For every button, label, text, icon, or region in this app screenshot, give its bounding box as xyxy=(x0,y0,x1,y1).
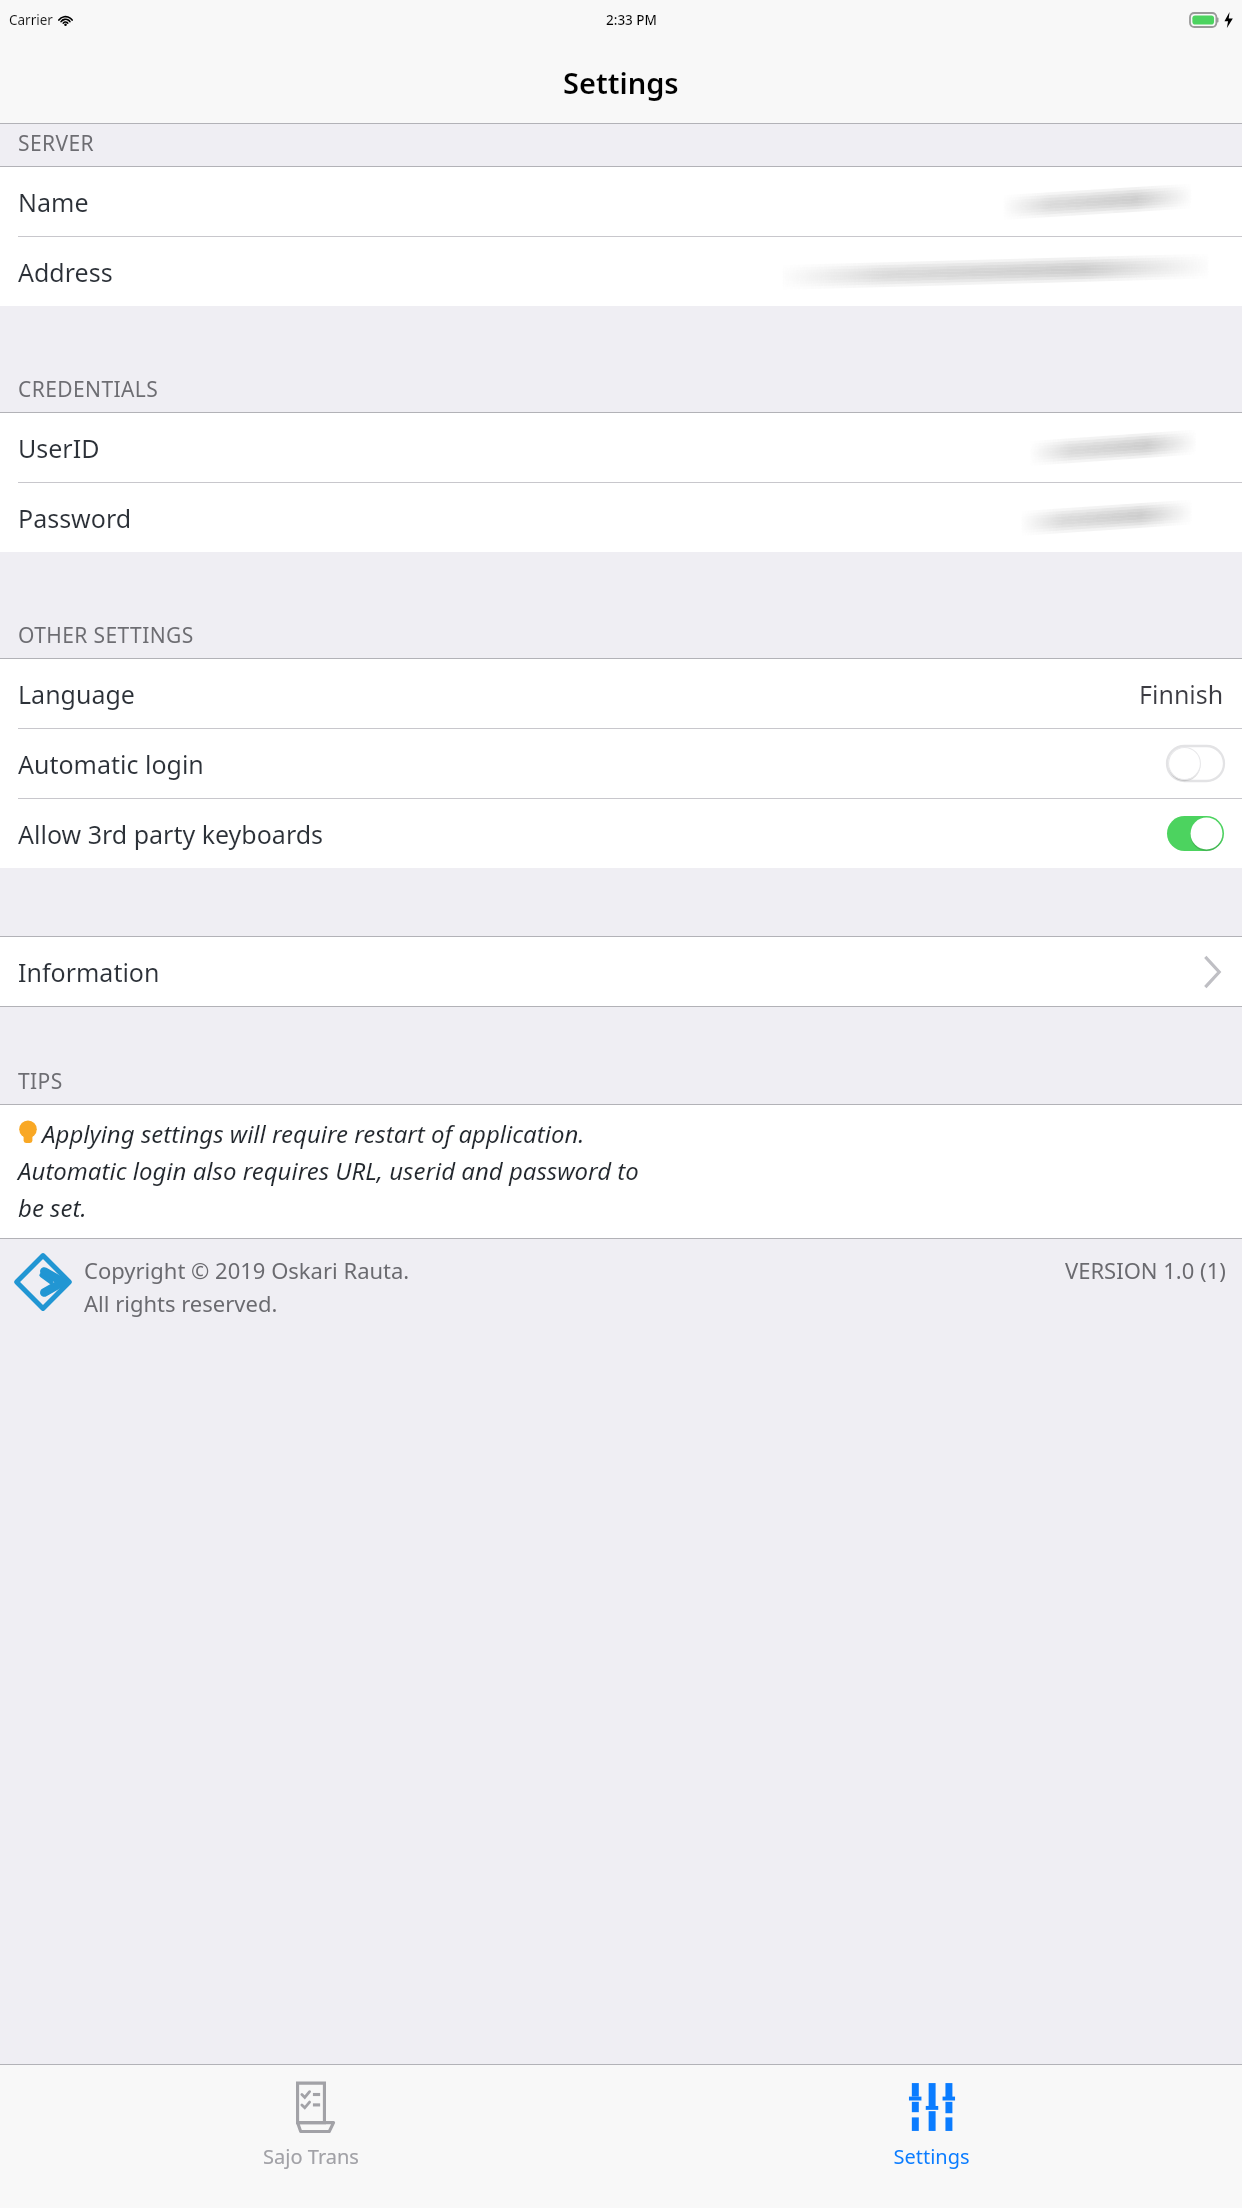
button[interactable]: Password xyxy=(0,483,1242,552)
staticText: Automatic login also requires URL, useri… xyxy=(18,1154,639,1187)
staticText: Automatic login xyxy=(18,747,204,781)
button[interactable]: Language xyxy=(0,659,1242,728)
other: Toggle off xyxy=(1167,746,1224,781)
button[interactable]: Information xyxy=(0,937,1242,1006)
button[interactable]: Allow 3rd party keyboards xyxy=(0,799,1242,868)
staticText: 2:33 PM xyxy=(606,11,657,29)
staticText: All rights reserved. xyxy=(84,1288,278,1318)
button[interactable]: Settings xyxy=(621,2065,1242,2208)
staticText: Settings xyxy=(893,2143,970,2170)
staticText: Language xyxy=(18,677,135,711)
button[interactable]: UserID xyxy=(0,413,1242,482)
staticText: Sajo Trans xyxy=(263,2143,359,2170)
staticText: Allow 3rd party keyboards xyxy=(18,817,324,851)
staticText: OTHER SETTINGS xyxy=(18,621,194,650)
staticText: CREDENTIALS xyxy=(18,375,159,404)
staticText: Password xyxy=(18,501,132,535)
staticText: Name xyxy=(18,185,89,219)
staticText: SERVER xyxy=(18,129,95,158)
other: Toggle on xyxy=(1167,816,1224,851)
staticText: be set. xyxy=(18,1191,87,1224)
staticText: Information xyxy=(18,955,160,989)
button[interactable]: Sajo Trans xyxy=(0,2065,621,2208)
staticText: TIPS xyxy=(18,1067,63,1096)
button[interactable]: Address xyxy=(0,237,1242,306)
button[interactable]: Automatic login xyxy=(0,729,1242,798)
staticText: Address xyxy=(18,255,113,289)
button[interactable]: Name xyxy=(0,167,1242,236)
staticText: Applying settings will require restart o… xyxy=(42,1117,585,1150)
staticText: VERSION 1.0 (1) xyxy=(1065,1255,1226,1285)
staticText: Finnish xyxy=(1139,677,1224,711)
staticText: Copyright © 2019 Oskari Rauta. xyxy=(84,1255,410,1285)
staticText: UserID xyxy=(18,431,100,465)
staticText: Settings xyxy=(563,63,679,102)
staticText: Carrier xyxy=(9,11,53,29)
